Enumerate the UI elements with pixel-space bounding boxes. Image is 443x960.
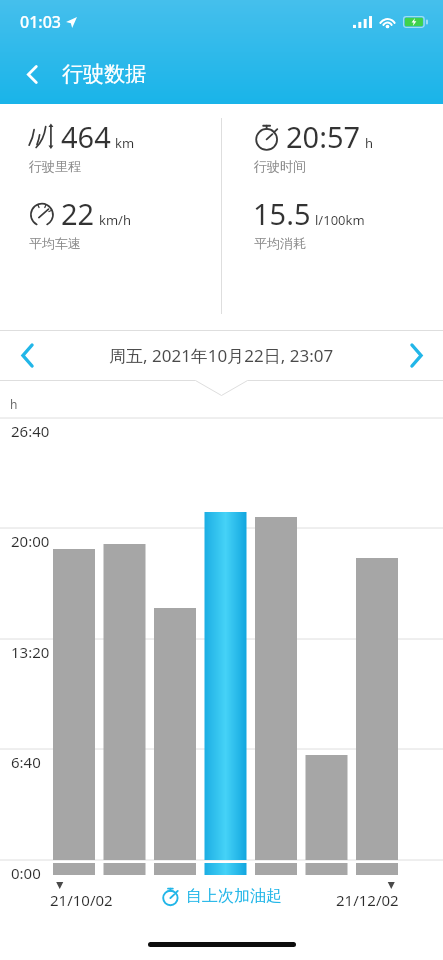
- staticText: 01:03: [20, 11, 61, 33]
- staticText: l/100km: [315, 211, 365, 229]
- staticText: 6:40: [11, 752, 41, 772]
- staticText: 15.5: [253, 194, 311, 233]
- button[interactable]: Back: [10, 52, 54, 96]
- staticText: h: [10, 396, 18, 412]
- staticText: 22: [61, 194, 95, 233]
- staticText: h: [365, 134, 374, 152]
- staticText: 平均车速: [29, 235, 81, 251]
- button[interactable]: 自上次加油起: [161, 886, 282, 906]
- staticText: 20:00: [11, 531, 50, 551]
- staticText: 行驶里程: [29, 158, 81, 174]
- staticText: 21/12/02: [336, 890, 399, 910]
- button[interactable]: Previous: [0, 331, 54, 380]
- staticText: km: [115, 134, 135, 152]
- staticText: 平均消耗: [254, 235, 306, 251]
- staticText: 周五, 2021年10月22日, 23:07: [109, 344, 334, 367]
- staticText: 21/10/02: [50, 890, 113, 910]
- staticText: 464: [61, 117, 111, 156]
- staticText: 行驶时间: [254, 158, 306, 174]
- staticText: 0:00: [11, 863, 41, 883]
- staticText: 26:40: [11, 421, 50, 441]
- staticText: 20:57: [286, 117, 361, 156]
- staticText: 13:20: [11, 642, 50, 662]
- staticText: 自上次加油起: [186, 886, 282, 906]
- staticText: 行驶数据: [62, 61, 146, 87]
- staticText: km/h: [99, 211, 131, 229]
- button[interactable]: Next: [389, 331, 443, 380]
